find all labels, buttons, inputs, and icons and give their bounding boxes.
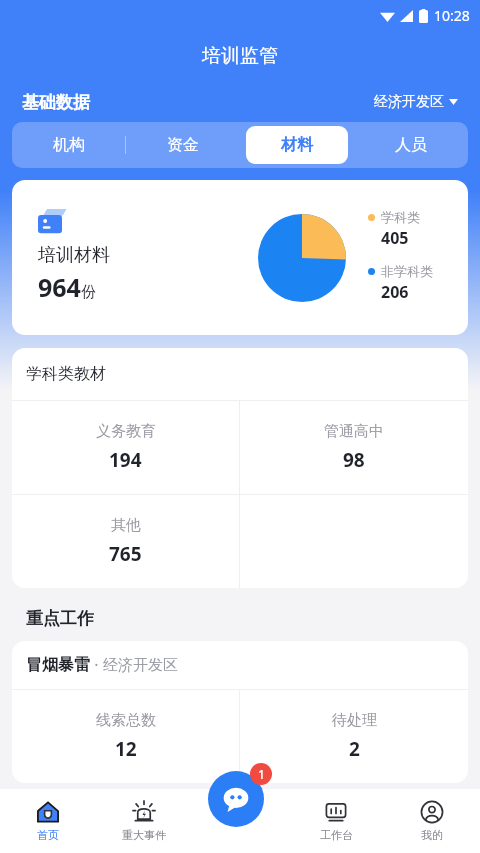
staticText: 206 <box>381 281 409 303</box>
staticText: 其他 <box>111 516 141 535</box>
staticText: 机构 <box>53 135 85 155</box>
staticText: 98 <box>343 447 365 473</box>
staticText: 工作台 <box>320 828 353 842</box>
staticText: 学科类 <box>381 209 420 225</box>
staticText: 人员 <box>395 135 427 155</box>
staticText: 待处理 <box>332 711 377 730</box>
staticText: 份 <box>81 283 96 302</box>
staticText: 培训监管 <box>202 44 278 68</box>
staticText: 经济开发区 <box>103 656 178 675</box>
staticText: 首页 <box>37 828 59 842</box>
staticText: 重大事件 <box>122 828 166 842</box>
staticText: · <box>90 654 103 676</box>
button[interactable]: 机构 <box>18 126 119 164</box>
staticText: 2 <box>349 736 360 762</box>
staticText: 资金 <box>167 135 199 155</box>
staticText: 1 <box>258 766 265 782</box>
button[interactable]: 重大事件 <box>96 789 192 853</box>
button[interactable]: 人员 <box>360 126 462 164</box>
button[interactable]: Messages <box>208 771 264 827</box>
staticText: 非学科类 <box>381 263 433 279</box>
staticText: 12 <box>115 736 137 762</box>
button[interactable]: 待处理 <box>240 690 468 783</box>
staticText: 培训材料 <box>38 244 110 267</box>
staticText: 管通高中 <box>324 422 384 441</box>
staticText: 经济开发区 <box>374 93 444 111</box>
staticText: 冒烟暴雷 <box>26 655 90 675</box>
staticText: 405 <box>381 227 409 249</box>
button[interactable]: 资金 <box>132 126 234 164</box>
button[interactable]: 义务教育 <box>12 401 239 494</box>
staticText: 义务教育 <box>96 422 156 441</box>
button[interactable]: 管通高中 <box>240 401 468 494</box>
staticText: 重点工作 <box>26 608 94 629</box>
staticText: 线索总数 <box>96 711 156 730</box>
button[interactable]: 我的 <box>384 789 480 853</box>
button[interactable]: 培训材料 <box>12 180 468 335</box>
staticText: 我的 <box>421 828 443 842</box>
staticText: 学科类教材 <box>26 364 106 384</box>
button[interactable]: 材料 <box>246 126 348 164</box>
staticText: 964 <box>38 270 81 304</box>
button[interactable]: 工作台 <box>288 789 384 853</box>
staticText: 10:28 <box>434 6 470 25</box>
staticText: 194 <box>109 447 142 473</box>
staticText: 材料 <box>281 135 313 155</box>
button[interactable]: 线索总数 <box>12 690 239 783</box>
button[interactable]: 首页 <box>0 789 96 853</box>
staticText: 基础数据 <box>22 92 90 113</box>
button[interactable]: 其他 <box>12 495 239 588</box>
button[interactable]: 经济开发区 <box>374 93 458 111</box>
staticText: 765 <box>109 541 142 567</box>
